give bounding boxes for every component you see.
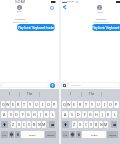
staticText: John xyxy=(17,10,22,13)
button[interactable]: D xyxy=(76,111,81,118)
button[interactable]: A xyxy=(1,111,7,118)
button[interactable]: O xyxy=(108,101,113,108)
button[interactable]: iMessage xyxy=(69,83,119,87)
button[interactable]: Q xyxy=(1,101,5,108)
button[interactable]: The xyxy=(20,89,39,99)
button[interactable]: Z xyxy=(72,121,77,128)
button[interactable]: J xyxy=(100,111,105,118)
button[interactable]: The xyxy=(82,89,101,99)
button[interactable]: X xyxy=(17,121,21,128)
staticText: K xyxy=(107,112,110,117)
staticText: D xyxy=(77,112,80,117)
button[interactable]: Y xyxy=(90,101,95,108)
button[interactable]: Backspace xyxy=(49,121,55,128)
button[interactable]: space xyxy=(82,131,106,138)
staticText: G xyxy=(89,112,92,117)
button[interactable]: K xyxy=(106,111,111,118)
button[interactable]: V xyxy=(27,121,31,128)
button[interactable]: I xyxy=(102,101,107,108)
button[interactable]: Y xyxy=(28,101,33,108)
staticText: Y xyxy=(29,102,32,107)
button[interactable]: M xyxy=(104,121,108,128)
button[interactable]: R xyxy=(78,101,83,108)
staticText: I xyxy=(42,102,44,107)
button[interactable]: F xyxy=(20,111,25,118)
button[interactable]: G xyxy=(88,111,93,118)
button[interactable]: X xyxy=(78,121,83,128)
staticText: The xyxy=(89,92,95,96)
button[interactable]: N xyxy=(99,121,103,128)
button[interactable]: Shift xyxy=(1,121,8,128)
button[interactable]: L xyxy=(112,111,117,118)
staticText: O xyxy=(47,102,50,107)
button[interactable]: P xyxy=(114,101,119,108)
staticText: Z xyxy=(12,122,15,127)
button[interactable]: 123 xyxy=(62,131,69,138)
button[interactable]: S xyxy=(8,111,13,118)
staticText: F xyxy=(22,112,24,117)
button[interactable]: C xyxy=(22,121,26,128)
button[interactable]: E xyxy=(11,101,15,108)
button[interactable]: U xyxy=(96,101,101,108)
button[interactable]: Play Ionic' Keyboard hacks! xyxy=(92,24,120,31)
button[interactable]: J xyxy=(38,111,43,118)
button[interactable]: I xyxy=(0,89,19,99)
button[interactable]: G xyxy=(26,111,31,118)
button[interactable]: return xyxy=(107,131,118,138)
staticText: Y xyxy=(91,102,94,107)
button[interactable]: T xyxy=(22,101,27,108)
button[interactable]: D xyxy=(14,111,19,118)
button[interactable]: C xyxy=(84,121,88,128)
button[interactable]: F xyxy=(82,111,87,118)
staticText: return xyxy=(109,133,117,136)
button[interactable]: Contact xyxy=(17,5,22,10)
button[interactable]: T xyxy=(84,101,89,108)
button[interactable]: W xyxy=(6,101,10,108)
button[interactable]: S xyxy=(69,111,75,118)
button[interactable]: E xyxy=(72,101,77,108)
button[interactable]: space xyxy=(21,131,44,138)
staticText: Carrier xyxy=(67,0,75,3)
button[interactable]: Shift xyxy=(62,121,69,128)
staticText: Play Ionic' Keyboard hacks! xyxy=(92,26,120,30)
staticText: I xyxy=(9,92,11,96)
button[interactable]: Switch keyboard xyxy=(9,131,14,138)
button[interactable]: return xyxy=(45,131,56,138)
button[interactable]: Z xyxy=(11,121,16,128)
button[interactable]: O xyxy=(46,101,51,108)
button[interactable]: H xyxy=(94,111,99,118)
button[interactable]: 123 xyxy=(1,131,8,138)
button[interactable]: A xyxy=(62,111,68,118)
button[interactable]: R xyxy=(16,101,21,108)
button[interactable]: N xyxy=(37,121,41,128)
button[interactable]: Dictate xyxy=(76,131,81,138)
button[interactable]: H xyxy=(32,111,37,118)
button[interactable]: Q xyxy=(62,101,66,108)
button[interactable]: W xyxy=(67,101,71,108)
button[interactable]: Contact xyxy=(97,5,102,10)
button[interactable]: Back xyxy=(63,5,66,9)
button[interactable]: M xyxy=(42,121,46,128)
staticText: B xyxy=(33,122,36,127)
button[interactable]: I xyxy=(61,89,81,99)
button[interactable]: Backspace xyxy=(111,121,117,128)
button[interactable]: V xyxy=(89,121,93,128)
button[interactable]: B xyxy=(94,121,98,128)
staticText: A xyxy=(3,112,6,117)
button[interactable]: U xyxy=(34,101,39,108)
button[interactable]: P xyxy=(52,101,57,108)
button[interactable]: B xyxy=(32,121,36,128)
button[interactable]: Dictate xyxy=(15,131,20,138)
staticText: U xyxy=(97,102,100,107)
button[interactable]: L xyxy=(50,111,55,118)
button[interactable]: K xyxy=(44,111,49,118)
button[interactable]: Send xyxy=(50,83,55,88)
button[interactable]: Camera xyxy=(63,84,66,87)
button[interactable]: Switch keyboard xyxy=(70,131,75,138)
button[interactable]: I xyxy=(40,101,45,108)
button[interactable]: Details xyxy=(50,6,54,10)
button[interactable]: Play Ionic' Keyboard hacks! xyxy=(17,24,55,31)
